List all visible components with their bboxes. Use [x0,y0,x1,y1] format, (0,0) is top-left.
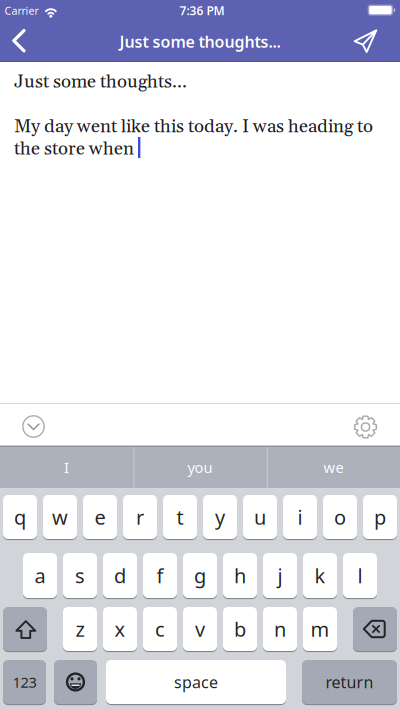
button[interactable]: 123 [3,660,46,704]
staticText: y [215,504,225,530]
button[interactable]: h [223,553,257,598]
button[interactable]: d [103,553,137,598]
button[interactable]: you [134,446,266,488]
button[interactable]: m [303,607,337,651]
button[interactable]: c [143,607,177,651]
button[interactable]: j [263,553,297,598]
button[interactable]: o [323,495,357,539]
staticText: q [14,504,26,530]
staticText: z [75,616,84,642]
button[interactable]: x [103,607,137,651]
button[interactable]: p [363,495,397,539]
staticText: u [254,504,266,530]
staticText: k [314,562,325,589]
button[interactable]: q [3,495,37,539]
staticText: s [75,562,85,589]
staticText: you [187,457,212,477]
button[interactable]: u [243,495,277,539]
staticText: w [52,504,68,530]
button[interactable]: Emoji [54,660,97,704]
staticText: g [194,562,206,589]
staticText: d [114,562,126,589]
staticText: t [176,504,183,530]
button[interactable]: space [106,660,286,704]
button[interactable]: y [203,495,237,539]
button[interactable]: a [23,553,57,598]
staticText: 7:36 PM [179,2,224,18]
staticText: Just some thoughts... My day went like t… [14,71,373,160]
button[interactable]: Settings [335,403,395,447]
button[interactable]: r [123,495,157,539]
staticText: l [357,562,362,589]
button[interactable]: return [302,660,397,704]
button[interactable]: g [183,553,217,598]
staticText: i [297,504,302,530]
button[interactable]: e [83,495,117,539]
staticText: o [334,504,346,530]
staticText: return [325,671,373,693]
button[interactable]: Send [0,0,400,62]
staticText: b [234,616,246,642]
button[interactable]: f [143,553,177,598]
staticText: space [174,671,218,693]
button[interactable]: t [163,495,197,539]
staticText: Just some thoughts... [119,31,280,52]
staticText: f [156,562,163,589]
staticText: 123 [12,672,36,692]
staticText: a [34,562,45,589]
button[interactable]: s [63,553,97,598]
button[interactable]: v [183,607,217,651]
button[interactable]: b [223,607,257,651]
button[interactable]: l [343,553,377,598]
staticText: v [195,616,205,642]
staticText: n [274,616,286,642]
button[interactable]: Dismiss keyboard [3,403,63,447]
button[interactable]: n [263,607,297,651]
button[interactable]: I [1,446,133,488]
button[interactable]: Shift [3,607,47,651]
button[interactable]: w [43,495,77,539]
staticText: j [277,562,282,589]
button[interactable]: Delete [353,607,397,651]
staticText: p [374,504,386,530]
button[interactable]: k [303,553,337,598]
staticText: Carrier [4,3,38,18]
staticText: h [234,562,246,589]
staticText: c [155,616,165,642]
staticText: e [94,504,105,530]
button[interactable]: i [283,495,317,539]
staticText: I [64,457,69,477]
staticText: x [114,616,125,642]
staticText: we [323,457,343,477]
button[interactable]: Back [0,0,44,44]
staticText: m [310,616,329,642]
button[interactable]: we [267,446,399,488]
button[interactable]: z [63,607,97,651]
staticText: r [136,504,144,530]
